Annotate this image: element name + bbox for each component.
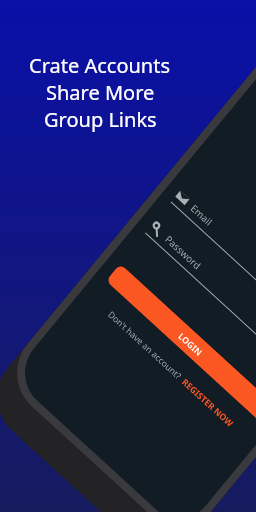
staticText: LOGIN xyxy=(176,330,205,358)
staticText: Group Links xyxy=(44,106,157,133)
button[interactable]: LOGIN xyxy=(106,263,256,424)
staticText: Crate Accounts xyxy=(29,52,171,79)
staticText: Password xyxy=(162,232,204,273)
staticText: Share More xyxy=(46,79,155,106)
staticText: Don't have an account? xyxy=(106,308,185,382)
staticText: Email xyxy=(188,201,215,229)
staticText: REGISTER NOW xyxy=(180,375,236,429)
